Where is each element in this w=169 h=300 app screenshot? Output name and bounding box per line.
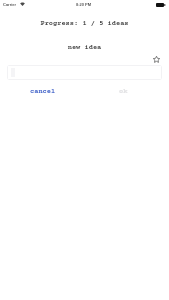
staticText: 8:20 PM: [76, 2, 92, 6]
staticText: cancel: [30, 88, 56, 96]
staticText: Carrier: [3, 2, 17, 6]
staticText: ok: [119, 88, 128, 96]
button[interactable]: ok: [110, 86, 136, 98]
staticText: new idea: [0, 44, 169, 52]
button[interactable]: cancel: [24, 86, 62, 98]
button[interactable]: [7, 65, 162, 80]
button[interactable]: Favorite: [150, 53, 163, 66]
staticText: Progress: 1 / 5 ideas: [0, 20, 169, 28]
